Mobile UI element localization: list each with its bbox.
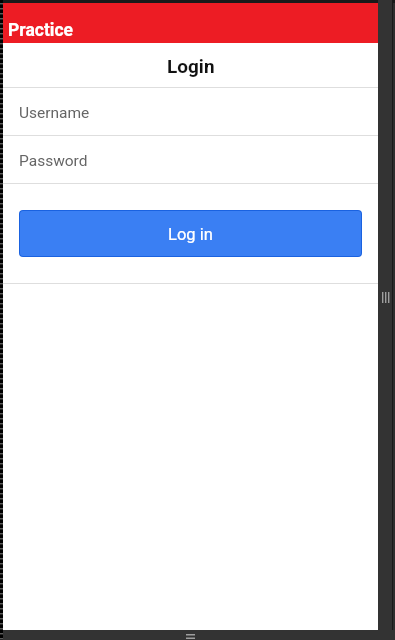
button[interactable]: Practice bbox=[3, 3, 378, 43]
button[interactable]: Resize viewport width bbox=[378, 0, 392, 640]
staticText: Log in bbox=[168, 225, 213, 244]
button[interactable]: Username bbox=[3, 88, 378, 135]
button[interactable]: Password bbox=[3, 136, 378, 183]
button[interactable]: Resize viewport height bbox=[0, 630, 395, 640]
button[interactable]: Log in bbox=[20, 211, 361, 256]
staticText: Username bbox=[19, 104, 90, 122]
staticText: Practice bbox=[8, 20, 74, 41]
staticText: Password bbox=[19, 152, 88, 170]
staticText: Login bbox=[167, 55, 215, 77]
